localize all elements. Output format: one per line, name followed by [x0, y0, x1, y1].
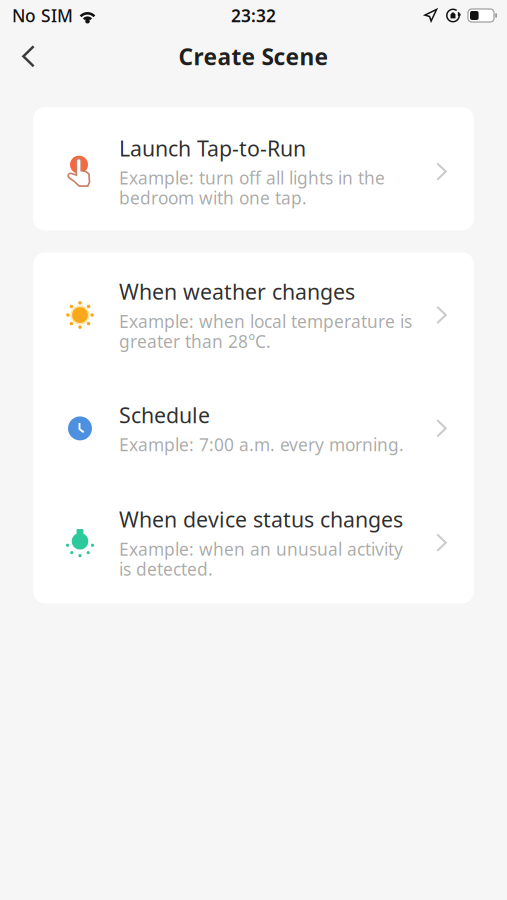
staticText: Example: turn off all lights in the bedr…	[119, 166, 385, 209]
button[interactable]: When device status changes	[33, 480, 474, 603]
button[interactable]: Back	[0, 36, 54, 77]
staticText: When weather changes	[119, 277, 355, 306]
staticText: Example: when local temperature is great…	[119, 310, 412, 353]
button[interactable]: Schedule	[33, 374, 474, 480]
staticText: Create Scene	[178, 41, 328, 71]
button[interactable]: Launch Tap-to-Run	[33, 107, 474, 230]
staticText: Example: 7:00 a.m. every morning.	[119, 433, 404, 456]
button[interactable]: When weather changes	[33, 252, 474, 374]
staticText: Schedule	[119, 401, 210, 429]
staticText: When device status changes	[119, 505, 403, 533]
staticText: Example: when an unusual activity is det…	[119, 537, 403, 580]
staticText: No SIM	[12, 4, 73, 27]
staticText: Launch Tap-to-Run	[119, 134, 306, 162]
staticText: 23:32	[231, 4, 276, 27]
